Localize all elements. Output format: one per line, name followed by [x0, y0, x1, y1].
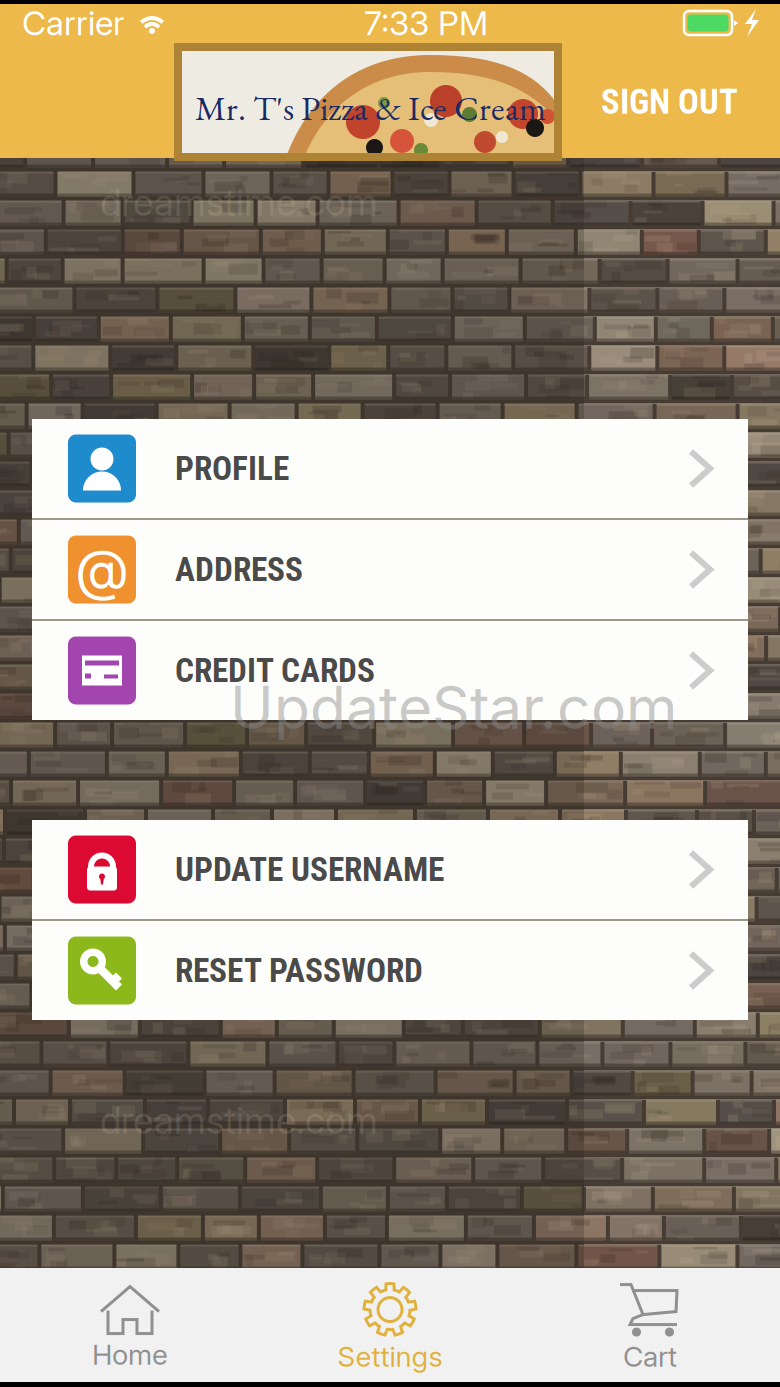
button[interactable]: Cart — [520, 1282, 780, 1373]
staticText: 7:33 PM — [364, 3, 488, 43]
staticText: UpdateStar.com — [230, 672, 677, 743]
staticText: dreamstime.com — [100, 1097, 378, 1143]
button[interactable]: Settings — [260, 1282, 520, 1373]
button[interactable]: UPDATE USERNAME — [32, 820, 748, 919]
staticText: dreamstime.com — [100, 179, 378, 225]
button[interactable]: CREDIT CARDS — [32, 621, 748, 720]
button[interactable]: RESET PASSWORD — [32, 921, 748, 1020]
staticText: Mr. T's Pizza & Ice Cream — [195, 85, 546, 130]
staticText: Home — [92, 1338, 168, 1371]
button[interactable]: @ — [32, 520, 748, 619]
staticText: PROFILE — [175, 449, 289, 488]
staticText: CREDIT CARDS — [175, 651, 375, 690]
staticText: SIGN OUT — [601, 82, 738, 122]
staticText: Cart — [623, 1340, 677, 1373]
staticText: UPDATE USERNAME — [175, 850, 444, 889]
button[interactable]: SIGN OUT — [601, 82, 738, 122]
staticText: ADDRESS — [175, 550, 303, 589]
staticText: Carrier — [22, 3, 124, 43]
staticText: RESET PASSWORD — [175, 951, 423, 990]
button[interactable]: PROFILE — [32, 419, 748, 518]
staticText: dreamstime.com — [100, 560, 378, 606]
staticText: dreamstime.com — [100, 927, 378, 973]
button[interactable]: Home — [0, 1284, 260, 1371]
staticText: Settings — [337, 1340, 442, 1373]
staticText: @ — [75, 536, 129, 603]
